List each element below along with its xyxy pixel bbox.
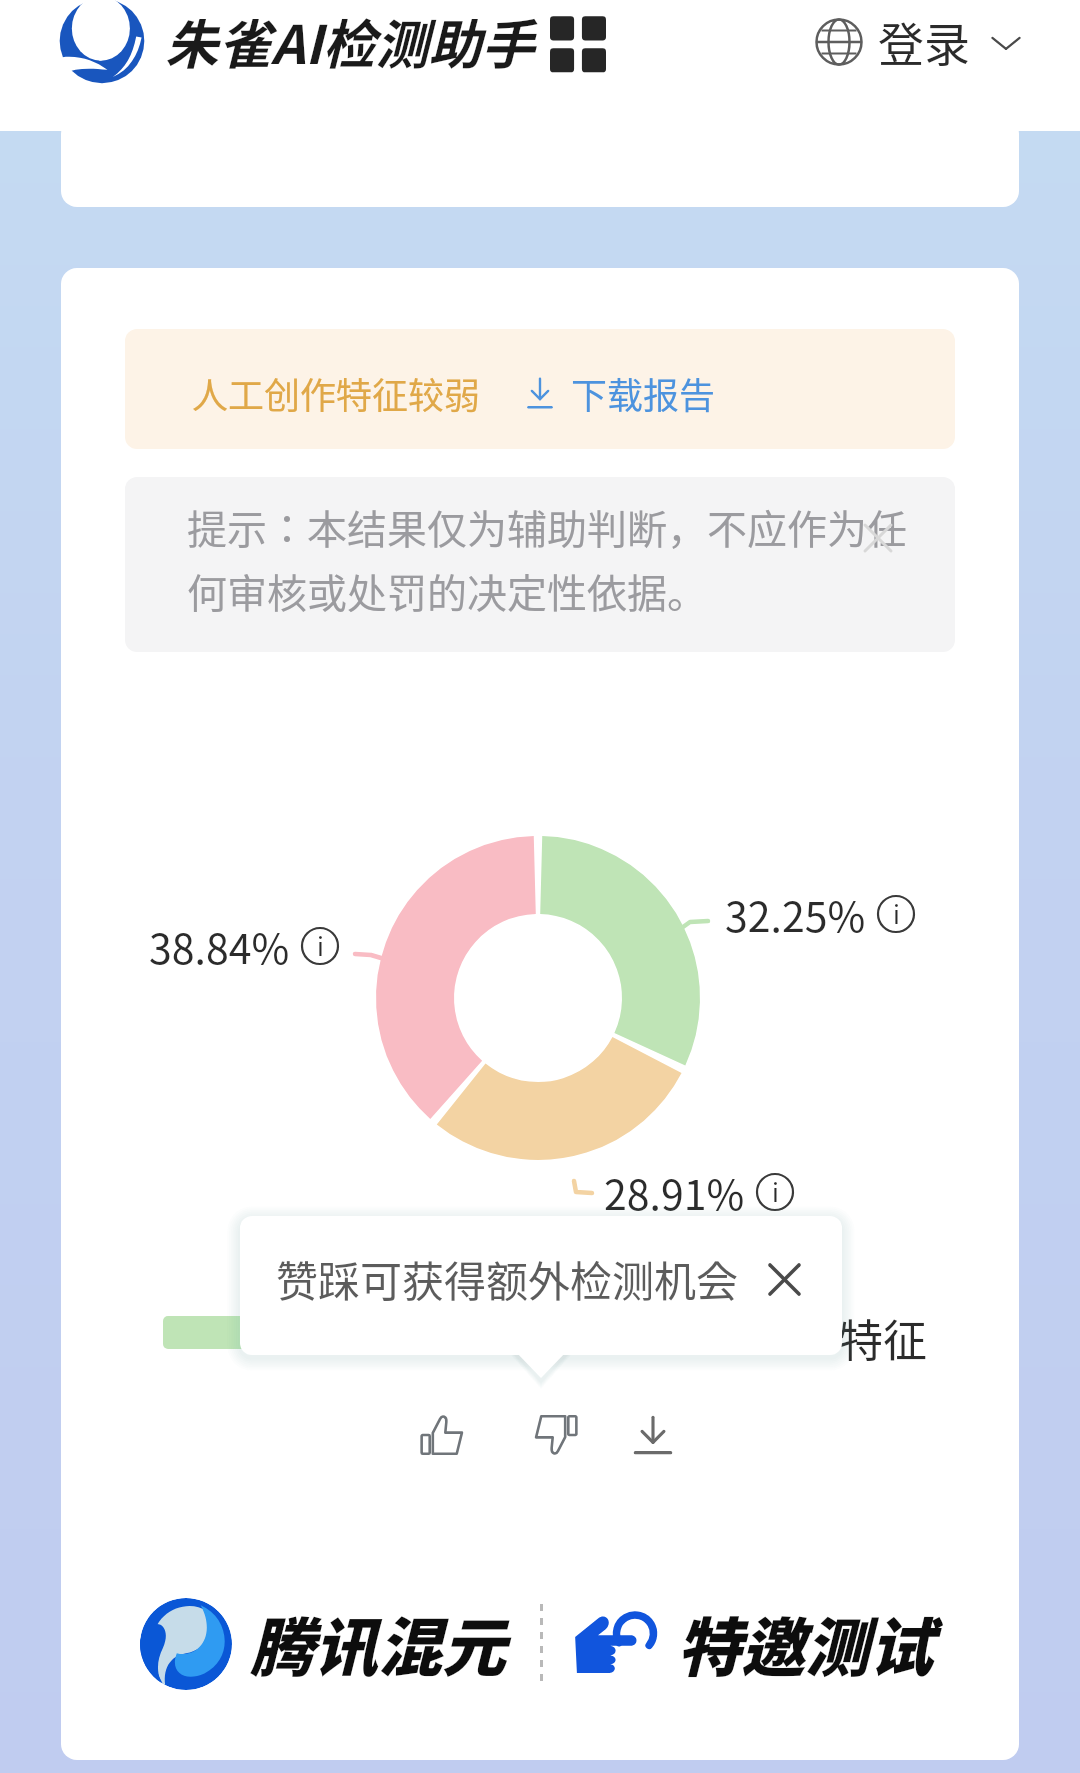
button[interactable]: 下载报告	[523, 367, 716, 419]
other: Info	[755, 1172, 795, 1212]
staticText: 特征	[839, 1306, 927, 1370]
staticText: i	[317, 927, 324, 963]
button[interactable]: Download	[627, 1409, 679, 1461]
staticText: 提示：本结果仅为辅助判断，不应作为任何审核或处罚的决定性依据。	[187, 498, 917, 620]
other: Expand	[989, 25, 1023, 59]
staticText: 32.25%	[725, 884, 866, 943]
other: Info	[300, 926, 340, 966]
staticText: 28.91%	[604, 1162, 745, 1221]
staticText: 赞踩可获得额外检测机会	[276, 1248, 739, 1309]
staticText: 朱雀AI检测助手	[165, 3, 535, 80]
other: Language	[814, 17, 864, 67]
staticText: i	[893, 895, 900, 931]
staticText: i	[772, 1173, 779, 1209]
staticText: 38.84%	[149, 916, 290, 975]
staticText: 特邀测试	[677, 1597, 933, 1690]
staticText: 下载报告	[571, 367, 716, 419]
other: Info	[876, 894, 916, 934]
button[interactable]: Like	[418, 1409, 470, 1461]
staticText: 腾讯混元	[250, 1597, 506, 1690]
button[interactable]: Dislike	[528, 1409, 580, 1461]
button[interactable]: Language	[806, 0, 1031, 83]
staticText: 人工创作特征较弱	[192, 367, 481, 419]
button[interactable]: Close	[763, 1258, 805, 1300]
staticText: 登录	[878, 8, 970, 75]
